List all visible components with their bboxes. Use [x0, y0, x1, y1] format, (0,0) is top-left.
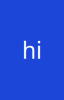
- staticText: hi: [22, 35, 42, 65]
